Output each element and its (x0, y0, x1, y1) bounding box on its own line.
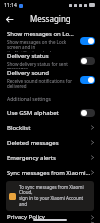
staticText: Show messages on Lock screen (7, 30, 76, 38)
button[interactable]: Off (80, 109, 95, 117)
button[interactable]: Off (80, 57, 95, 65)
staticText: Privacy Policy (7, 213, 91, 221)
staticText: Messaging (30, 13, 71, 24)
button[interactable]: On (80, 76, 95, 84)
button[interactable]: On (80, 37, 95, 45)
button[interactable]: Privacy Policy (0, 211, 100, 223)
button[interactable]: Blocklist (0, 120, 100, 135)
staticText: To sync messages from Xiaomi Cloud, sign… (19, 184, 91, 208)
button[interactable]: Emergency alerts (0, 150, 100, 165)
staticText: Emergency alerts (7, 154, 91, 162)
staticText: Show messages on the Lock screen and in … (7, 39, 76, 52)
staticText: Delivery status (7, 52, 49, 60)
button[interactable]: To sync messages from Xiaomi Cloud, sign… (6, 181, 94, 211)
staticText: Blocklist (7, 124, 91, 132)
button[interactable]: Show messages on Lock screen (0, 30, 100, 52)
staticText: Show delivery status for sent messages (7, 61, 76, 69)
button[interactable]: Delivery sound (0, 69, 100, 91)
button[interactable]: Sync messages from Xiaomi Cloud (0, 165, 100, 180)
staticText: 11:14 (4, 2, 17, 9)
staticText: Deleted messages (7, 139, 91, 147)
button[interactable]: Back (2, 12, 16, 26)
staticText: Delivery sound (7, 69, 50, 77)
staticText: Additional settings (7, 96, 51, 103)
staticText: Use GSM alphabet (7, 109, 59, 117)
button[interactable]: Deleted messages (0, 135, 100, 150)
button[interactable]: Delivery status (0, 52, 100, 69)
button[interactable]: Use GSM alphabet (0, 105, 100, 120)
staticText: Receive sound notifications for delivere… (7, 78, 76, 91)
staticText: Sync messages from Xiaomi Cloud (7, 169, 91, 177)
